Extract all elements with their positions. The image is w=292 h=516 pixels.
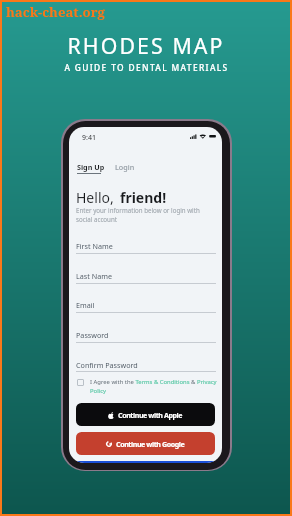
button[interactable]: Sign Up [77, 162, 105, 172]
staticText: Continue with Apple [118, 410, 183, 420]
staticText: First Name [76, 241, 113, 251]
button[interactable]: Continue with Apple [76, 403, 215, 426]
staticText: Continue with Google [116, 439, 185, 449]
button[interactable]: I Agree with the Terms & Conditions & Pr… [77, 378, 217, 395]
staticText: Hello, [76, 188, 114, 207]
staticText: Email [76, 300, 95, 310]
button[interactable]: Continue with Google [76, 432, 215, 455]
staticText: Password [76, 330, 109, 340]
staticText: Sign Up [77, 162, 105, 172]
staticText: Enter your information below or login wi… [76, 206, 207, 224]
staticText: 9:41 [82, 133, 96, 143]
staticText: I Agree with the Terms & Conditions & Pr… [90, 378, 217, 395]
staticText: Confirm Password [76, 360, 138, 370]
staticText: RHODES MAP [67, 31, 225, 60]
staticText: friend! [120, 188, 167, 207]
staticText: hack-cheat.org [6, 3, 105, 21]
staticText: Last Name [76, 271, 112, 281]
staticText: A GUIDE TO DENTAL MATERIALS [64, 62, 229, 73]
button[interactable]: Login [115, 162, 135, 172]
